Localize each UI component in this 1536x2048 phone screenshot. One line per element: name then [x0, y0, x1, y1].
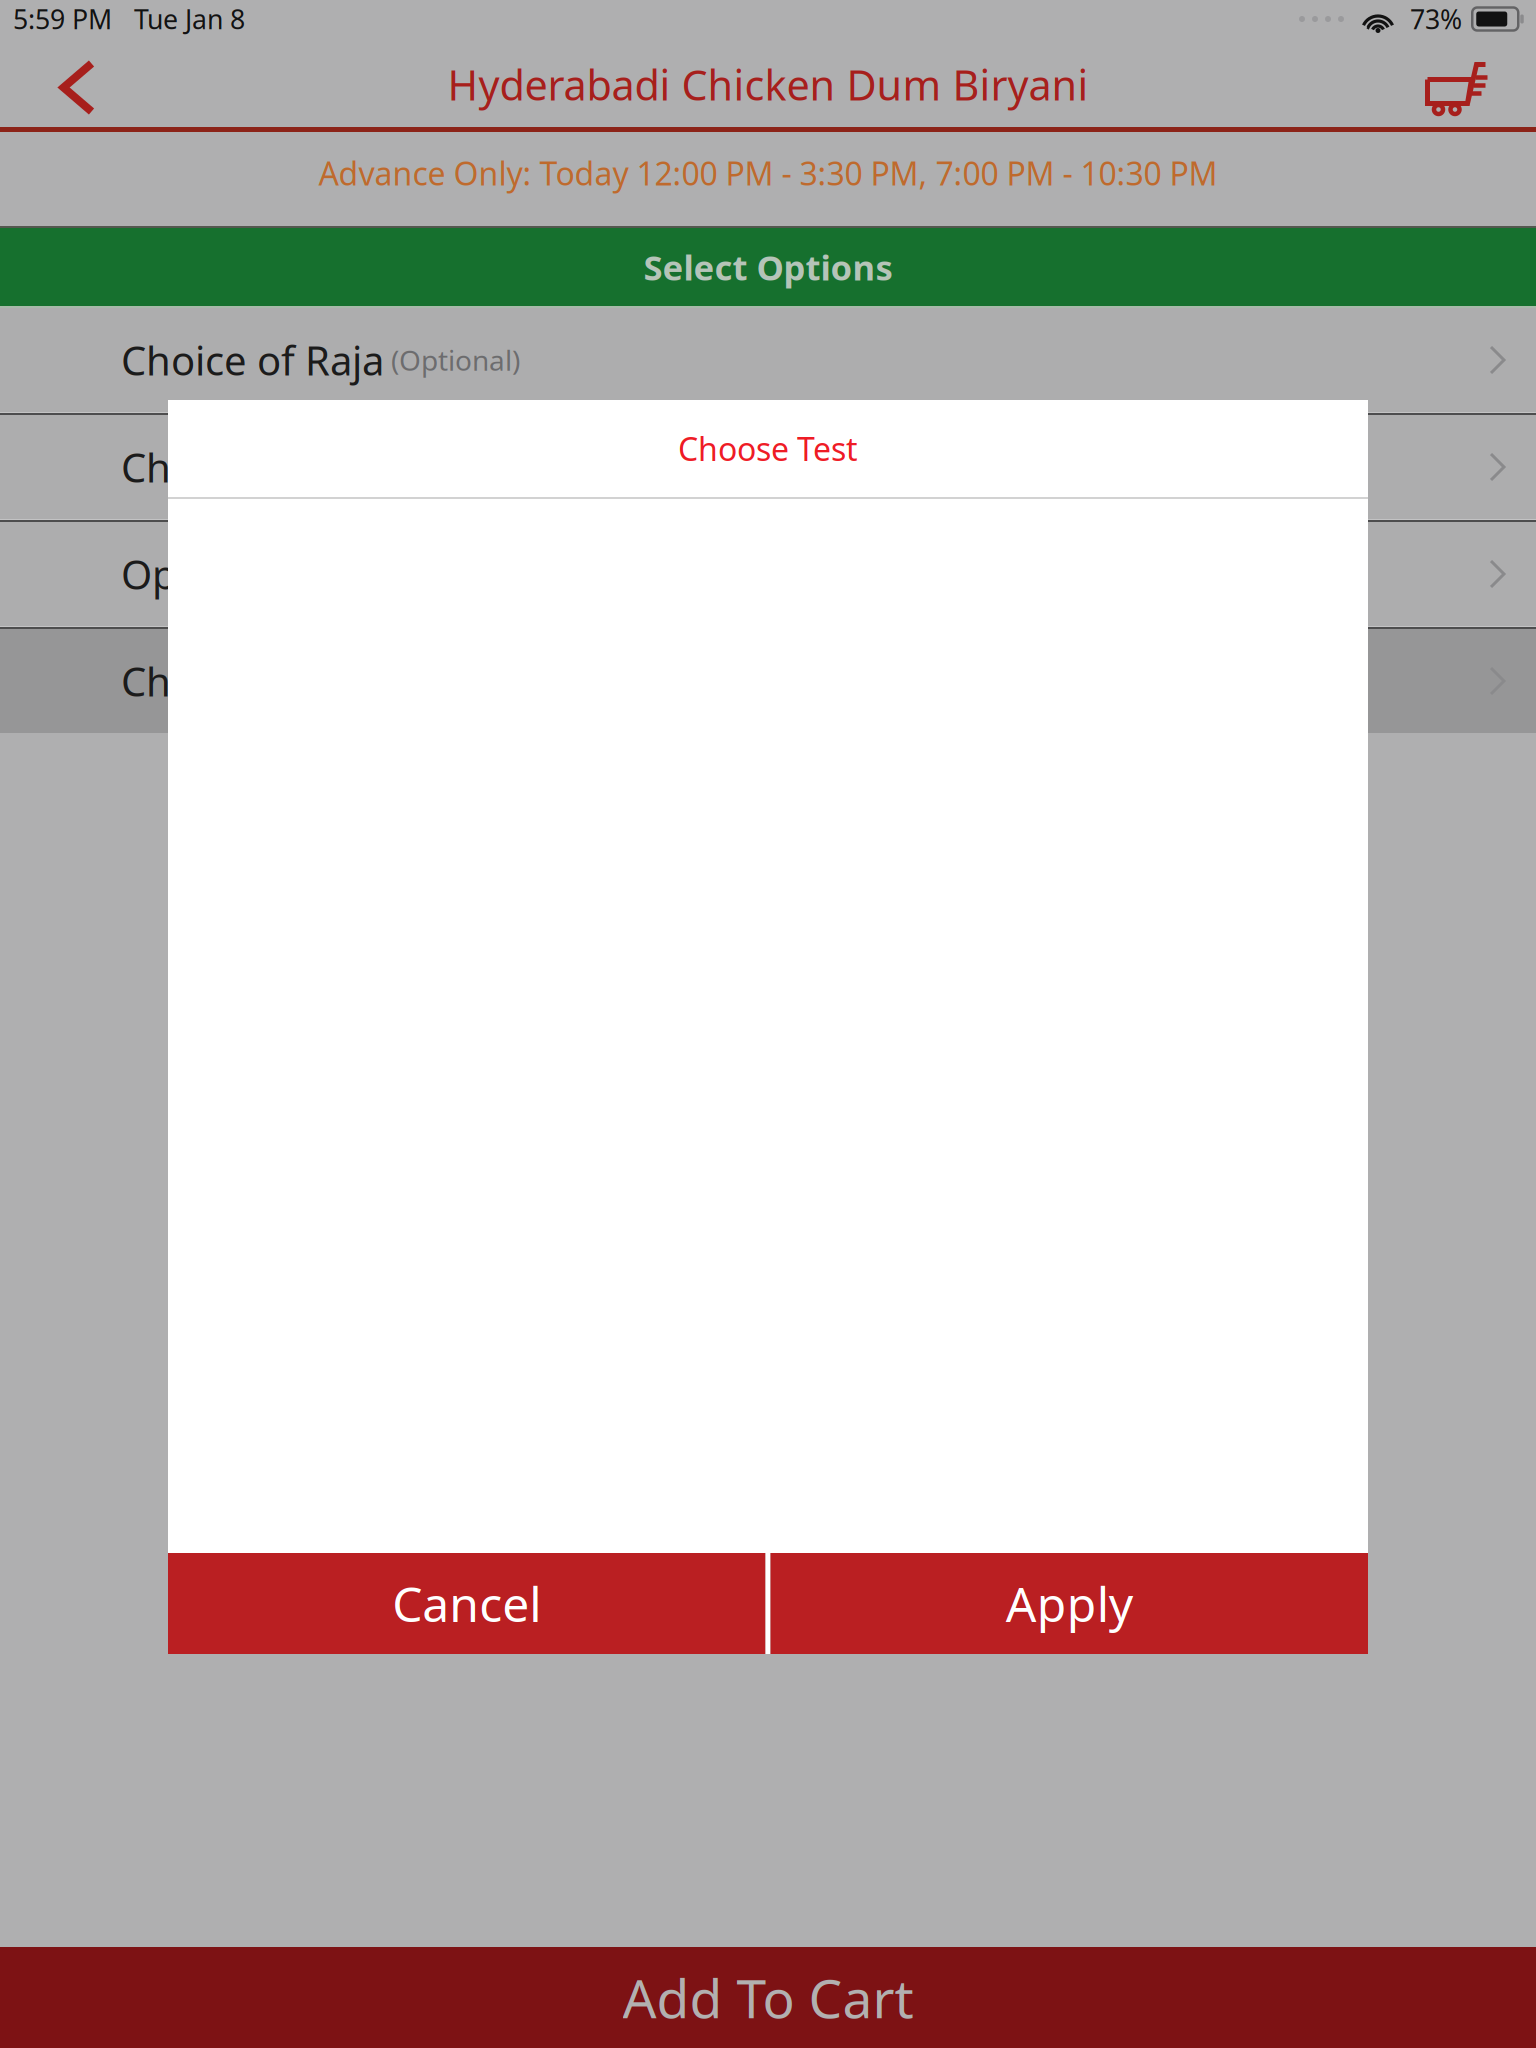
staticText: Choose Test — [678, 427, 858, 470]
staticText: Apply — [1006, 1572, 1133, 1635]
staticText: 5:59 PM — [13, 1, 112, 37]
button[interactable]: Choice of Rice — [0, 415, 1536, 519]
staticText: Advance Only: Today 12:00 PM - 3:30 PM, … — [318, 152, 1217, 194]
button[interactable]: Add To Cart — [0, 1947, 1536, 2048]
staticText: Tue Jan 8 — [134, 1, 245, 37]
button[interactable]: Back — [0, 48, 155, 127]
staticText: Choose Test — [121, 654, 346, 707]
button[interactable]: Cancel — [168, 1553, 765, 1654]
staticText: 73% — [1410, 1, 1462, 37]
button[interactable]: Cart — [1375, 48, 1536, 127]
staticText: Hyderabadi Chicken Dum Biryani — [447, 57, 1088, 112]
button[interactable]: Apply — [770, 1553, 1368, 1654]
staticText: Choice of Raja — [121, 333, 384, 386]
button[interactable]: Choose Test — [0, 629, 1536, 733]
button[interactable]: Choice of Raja — [0, 308, 1536, 412]
staticText: Cancel — [392, 1572, 541, 1635]
staticText: (Optional) — [384, 341, 520, 379]
staticText: Add To Cart — [622, 1962, 913, 2033]
staticText: Select Options — [643, 244, 892, 290]
button[interactable]: Options — [0, 522, 1536, 626]
staticText: Options — [121, 547, 269, 600]
staticText: Choice of Rice — [121, 440, 382, 493]
